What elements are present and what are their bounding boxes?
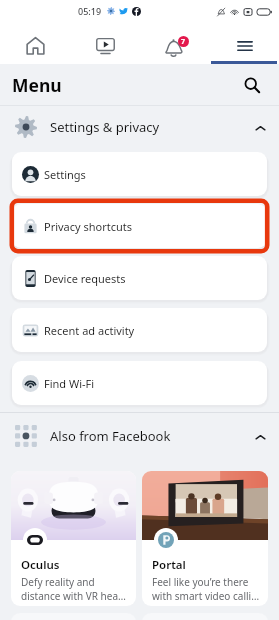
staticText: 7 xyxy=(181,37,186,47)
button[interactable]: Find Wi-Fi xyxy=(12,361,267,405)
button[interactable]: Also from Facebook xyxy=(0,416,279,456)
staticText: Settings xyxy=(44,167,86,182)
staticText: 05:19 xyxy=(78,5,102,17)
button[interactable]: Oculus xyxy=(11,471,136,606)
staticText: Device requests xyxy=(44,271,126,286)
staticText: Recent ad activity xyxy=(44,323,135,338)
button[interactable]: Settings xyxy=(12,152,267,196)
staticText: Defy reality and xyxy=(21,575,95,589)
button[interactable]: Video xyxy=(70,22,140,64)
button[interactable]: Privacy shortcuts xyxy=(12,204,267,248)
staticText: Menu xyxy=(12,73,62,97)
staticText: Feel like you’re there xyxy=(152,575,249,589)
button[interactable]: Menu xyxy=(210,22,279,64)
button[interactable]: Portal xyxy=(142,471,268,606)
button[interactable]: Search xyxy=(237,70,267,100)
staticText: Settings & privacy xyxy=(50,118,160,136)
staticText: distance with VR hea… xyxy=(21,589,126,603)
staticText: Also from Facebook xyxy=(50,427,171,445)
staticText: with smart video calli… xyxy=(152,589,260,603)
button[interactable]: Settings & privacy xyxy=(0,107,279,147)
button[interactable]: Recent ad activity xyxy=(12,308,267,352)
button[interactable]: Home xyxy=(0,22,70,64)
staticText: Find Wi-Fi xyxy=(44,376,95,391)
button[interactable]: Notifications xyxy=(140,22,210,64)
staticText: Portal xyxy=(152,557,186,573)
button[interactable]: Device requests xyxy=(12,256,267,300)
staticText: Privacy shortcuts xyxy=(44,219,133,234)
staticText: Oculus xyxy=(21,557,60,573)
